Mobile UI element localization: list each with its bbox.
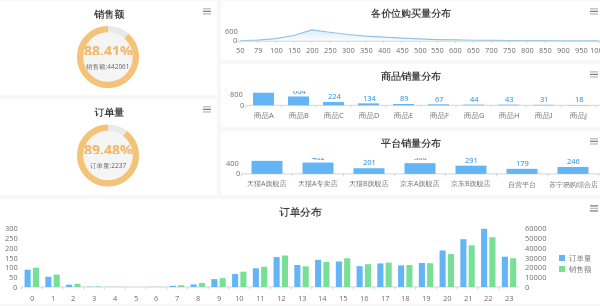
staticText: 商品J <box>570 110 588 120</box>
staticText: 0 <box>30 293 35 303</box>
staticText: 350 <box>360 45 373 55</box>
staticText: 商品销量分布 <box>381 70 441 83</box>
staticText: 8 <box>196 293 201 303</box>
staticText: 10000 <box>525 272 547 282</box>
staticText: 450 <box>396 45 409 55</box>
staticText: 600 <box>449 45 462 55</box>
staticText: 0 <box>525 282 530 292</box>
staticText: 200 <box>5 243 18 253</box>
staticText: 43 <box>505 94 514 104</box>
staticText: 550 <box>431 45 444 55</box>
staticText: 800 <box>521 45 534 55</box>
staticText: 各价位购买量分布 <box>371 7 451 20</box>
staticText: 850 <box>539 45 552 55</box>
staticText: 订单量 <box>94 106 124 119</box>
staticText: 89.48% <box>84 140 133 154</box>
staticText: 291 <box>465 158 478 165</box>
staticText: 0 <box>240 100 245 110</box>
staticText: 订单分布 <box>279 206 321 219</box>
staticText: 5 <box>134 293 139 303</box>
staticText: 13 <box>298 293 307 303</box>
staticText: 67 <box>435 94 444 104</box>
staticText: 自营平台 <box>508 180 536 189</box>
staticText: 500 <box>414 45 427 55</box>
staticText: 商品F <box>430 110 449 120</box>
staticText: 14 <box>318 293 327 303</box>
staticText: 134 <box>363 93 376 103</box>
staticText: 商品E <box>394 110 414 120</box>
button[interactable]: 商品销量分布 <box>221 64 600 127</box>
staticText: 100 <box>270 45 283 55</box>
staticText: 天猫B旗舰店 <box>349 179 389 189</box>
staticText: 商品H <box>499 110 520 120</box>
staticText: 44 <box>470 94 479 104</box>
button[interactable]: Chart options <box>203 105 211 115</box>
staticText: 18 <box>401 293 410 303</box>
staticText: 224 <box>328 91 341 101</box>
staticText: 650 <box>467 45 480 55</box>
staticText: 402 <box>312 158 325 162</box>
staticText: 17 <box>381 293 390 303</box>
staticText: 1000 <box>590 45 600 55</box>
button[interactable]: Chart options <box>590 7 598 17</box>
staticText: 600 <box>225 26 238 36</box>
staticText: 销售额 <box>94 8 124 21</box>
staticText: 18 <box>575 94 584 104</box>
staticText: 15 <box>339 293 348 303</box>
staticText: 22 <box>484 293 493 303</box>
staticText: 4 <box>113 293 118 303</box>
staticText: 380 <box>414 158 427 162</box>
staticText: 300 <box>5 223 18 233</box>
staticText: 16 <box>360 293 369 303</box>
staticText: 京东B旗舰店 <box>451 179 491 189</box>
staticText: 89 <box>400 93 409 103</box>
staticText: 天猫A专卖店 <box>298 179 338 189</box>
staticText: 400 <box>378 45 391 55</box>
staticText: 604 <box>293 91 306 96</box>
staticText: 12 <box>277 293 286 303</box>
staticText: 2 <box>71 293 76 303</box>
staticText: 11 <box>256 293 265 303</box>
button[interactable]: 订单分布 <box>0 199 600 304</box>
staticText: 20 <box>443 293 452 303</box>
button[interactable]: Chart options <box>590 137 598 147</box>
staticText: 300 <box>342 45 355 55</box>
staticText: 246 <box>567 158 580 166</box>
button[interactable]: Chart options <box>203 7 211 17</box>
staticText: 30000 <box>525 253 547 263</box>
staticText: 0 <box>236 168 241 178</box>
staticText: 平台销量分布 <box>381 137 441 150</box>
button[interactable]: 销售额 <box>0 1 217 95</box>
staticText: 50000 <box>525 233 547 243</box>
button[interactable]: 各价位购买量分布 <box>221 1 600 60</box>
staticText: 销售额 <box>569 265 592 274</box>
staticText: 750 <box>503 45 516 55</box>
staticText: 订单量 <box>569 254 592 263</box>
staticText: 88.41% <box>84 41 133 55</box>
button[interactable]: Chart options <box>590 70 598 80</box>
staticText: 50 <box>9 272 18 282</box>
staticText: 400 <box>226 158 239 168</box>
staticText: 商品A <box>254 110 274 120</box>
staticText: 商品D <box>359 110 380 120</box>
staticText: 商品G <box>464 110 485 120</box>
staticText: 150 <box>5 253 18 263</box>
staticText: 9 <box>217 293 222 303</box>
staticText: 0 <box>233 35 238 45</box>
staticText: 商品C <box>324 110 344 120</box>
staticText: 50 <box>236 45 245 55</box>
staticText: 250 <box>5 233 18 243</box>
staticText: 31 <box>540 94 549 104</box>
staticText: 7 <box>175 293 180 303</box>
button[interactable]: 平台销量分布 <box>221 131 600 195</box>
button[interactable]: Chart options <box>590 204 598 214</box>
staticText: 250 <box>324 45 337 55</box>
staticText: 179 <box>516 158 529 168</box>
staticText: 商品I <box>535 110 553 120</box>
staticText: 21 <box>464 293 473 303</box>
staticText: 苏宁易购综合店 <box>549 180 598 189</box>
button[interactable]: 订单量 <box>0 99 217 195</box>
staticText: 0 <box>13 282 18 292</box>
